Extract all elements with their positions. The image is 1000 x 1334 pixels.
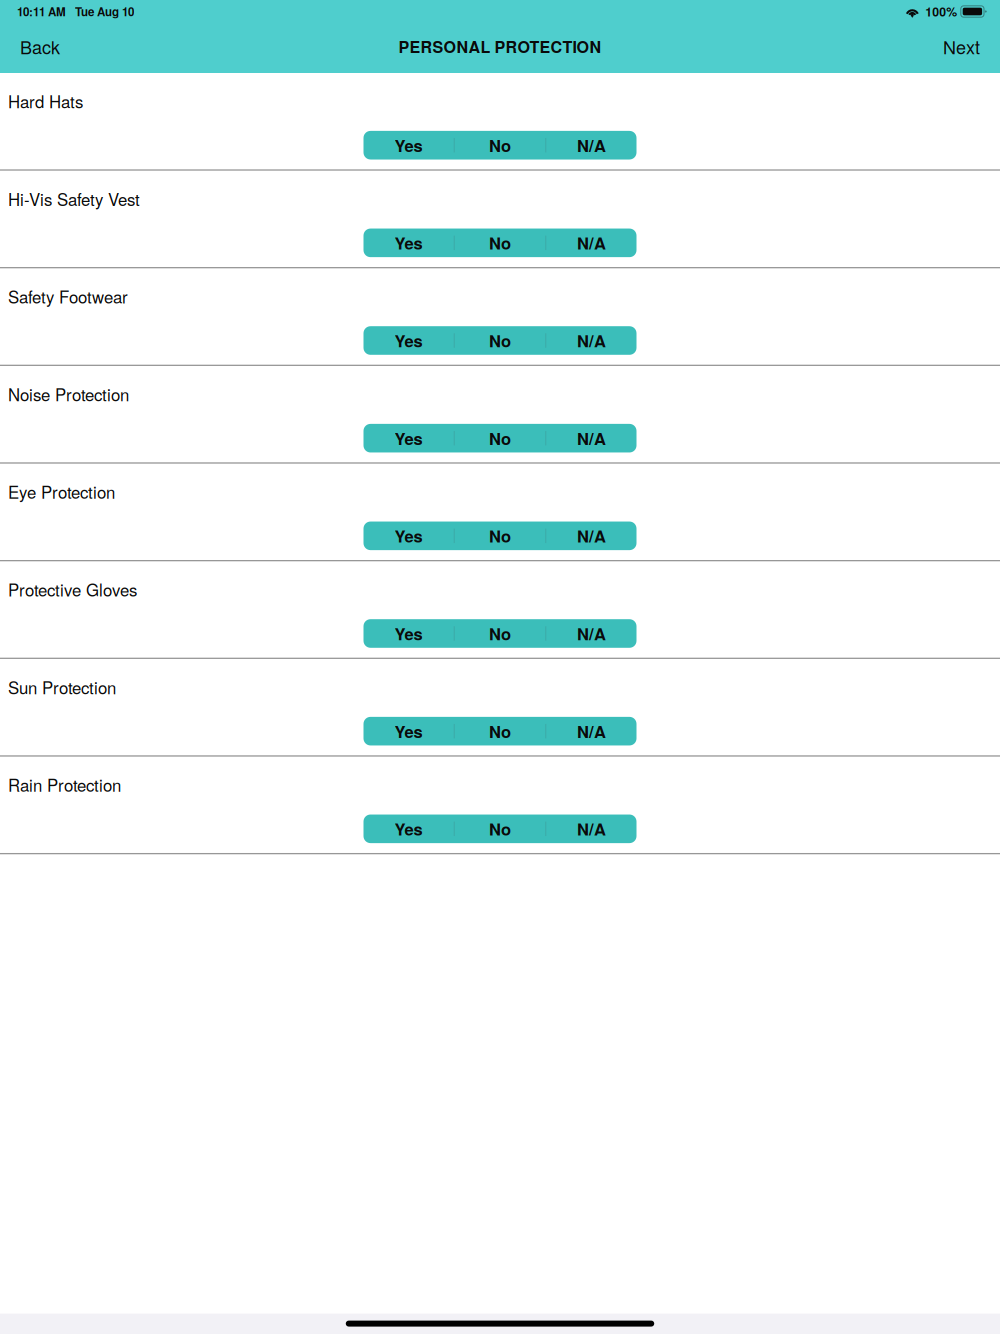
staticText: Hi-Vis Safety Vest <box>8 187 140 211</box>
button[interactable]: No <box>455 814 545 843</box>
button[interactable]: No <box>455 326 545 355</box>
staticText: N/A <box>577 524 606 548</box>
button[interactable]: Yes <box>364 131 454 159</box>
staticText: N/A <box>577 426 606 450</box>
button[interactable]: Next <box>929 23 1000 70</box>
staticText: Protective Gloves <box>8 577 137 601</box>
button[interactable]: Yes <box>364 521 454 550</box>
staticText: No <box>489 524 511 548</box>
button[interactable]: No <box>455 229 545 257</box>
staticText: Yes <box>395 524 423 548</box>
staticText: No <box>489 426 511 450</box>
staticText: N/A <box>577 817 606 841</box>
staticText: N/A <box>577 329 606 352</box>
staticText: No <box>489 622 511 645</box>
staticText: N/A <box>577 719 606 743</box>
staticText: No <box>489 329 511 352</box>
staticText: PERSONAL PROTECTION <box>398 35 601 58</box>
button[interactable]: No <box>455 131 545 159</box>
staticText: Hard Hats <box>8 89 83 113</box>
button[interactable]: Yes <box>364 619 454 648</box>
staticText: No <box>489 133 511 157</box>
button[interactable]: N/A <box>546 521 636 550</box>
staticText: Rain Protection <box>8 773 121 797</box>
button[interactable]: N/A <box>546 717 636 745</box>
staticText: Back <box>20 34 60 59</box>
staticText: Yes <box>395 133 423 157</box>
staticText: No <box>489 817 511 841</box>
button[interactable]: No <box>455 424 545 452</box>
staticText: Safety Footwear <box>8 284 128 308</box>
staticText: 100% <box>925 3 957 20</box>
button[interactable]: Yes <box>364 814 454 843</box>
button[interactable]: No <box>455 717 545 745</box>
button[interactable]: N/A <box>546 424 636 452</box>
button[interactable]: Back <box>0 23 74 70</box>
staticText: N/A <box>577 231 606 255</box>
button[interactable]: Yes <box>364 326 454 355</box>
staticText: N/A <box>577 622 606 645</box>
button[interactable]: N/A <box>546 131 636 159</box>
button[interactable]: N/A <box>546 229 636 257</box>
staticText: Yes <box>395 719 423 743</box>
button[interactable]: N/A <box>546 619 636 648</box>
staticText: Yes <box>395 426 423 450</box>
button[interactable]: Yes <box>364 229 454 257</box>
button[interactable]: Yes <box>364 424 454 452</box>
staticText: Yes <box>395 231 423 255</box>
staticText: Noise Protection <box>8 382 129 406</box>
staticText: Yes <box>395 622 423 645</box>
button[interactable]: No <box>455 619 545 648</box>
staticText: Yes <box>395 329 423 352</box>
button[interactable]: No <box>455 521 545 550</box>
button[interactable]: N/A <box>546 814 636 843</box>
staticText: Sun Protection <box>8 675 116 699</box>
staticText: No <box>489 719 511 743</box>
button[interactable]: Yes <box>364 717 454 745</box>
staticText: Yes <box>395 817 423 841</box>
staticText: Next <box>943 34 980 59</box>
staticText: Eye Protection <box>8 480 115 504</box>
staticText: 10:11 AM <box>17 3 66 20</box>
button[interactable]: N/A <box>546 326 636 355</box>
staticText: N/A <box>577 133 606 157</box>
staticText: Tue Aug 10 <box>75 3 134 20</box>
staticText: No <box>489 231 511 255</box>
